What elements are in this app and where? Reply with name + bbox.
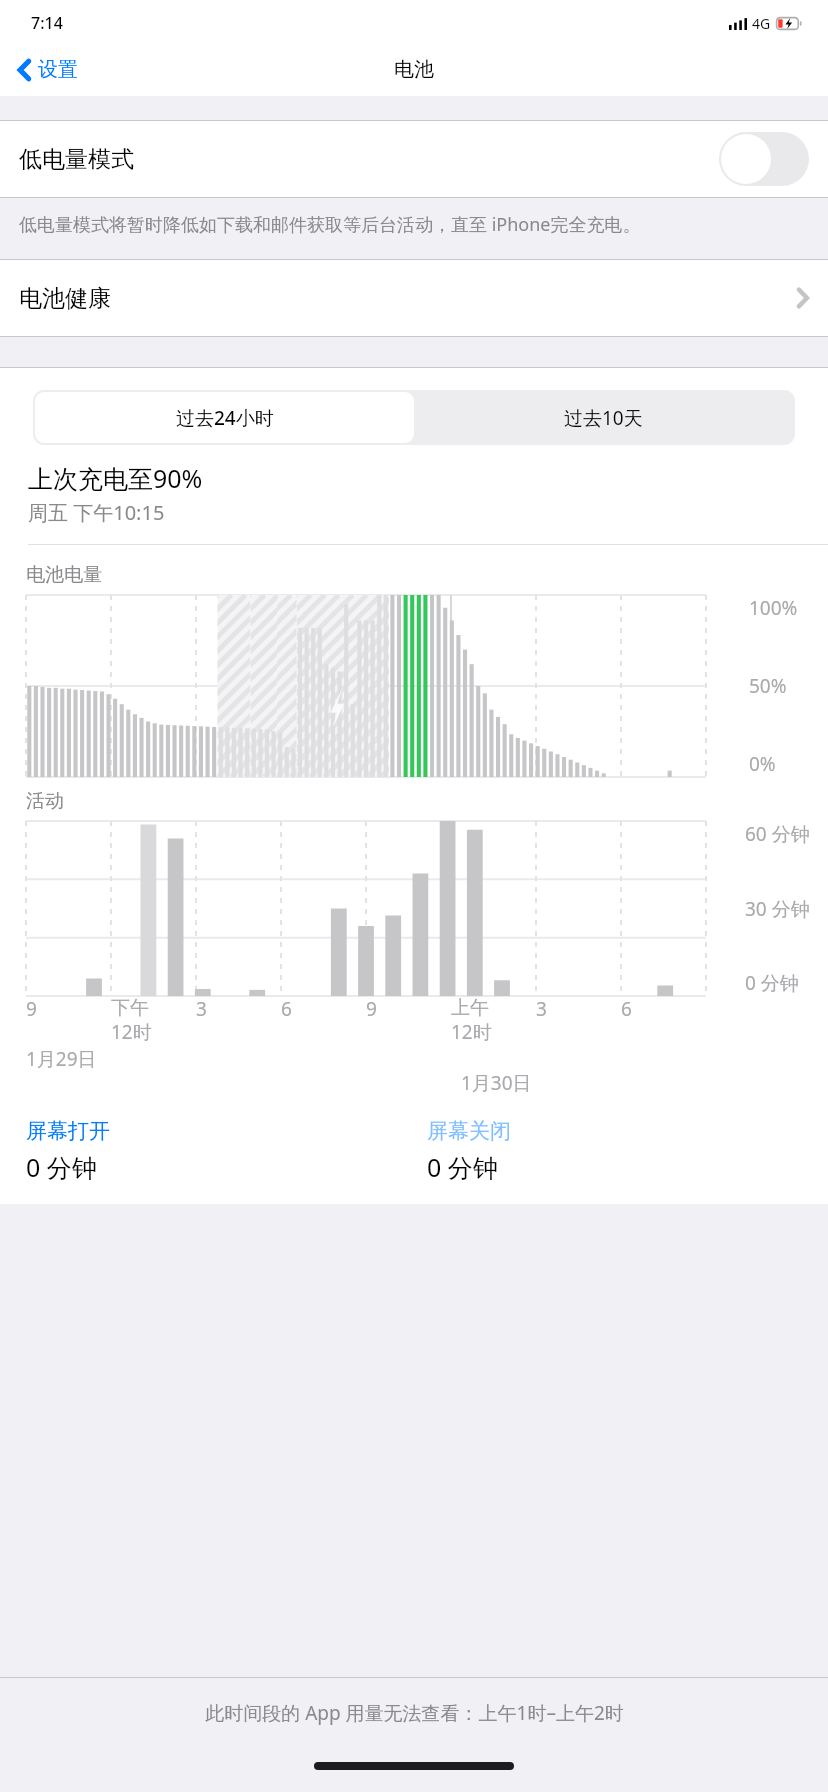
staticText: 9 [366, 996, 377, 1022]
staticText: 屏幕关闭 [427, 1118, 511, 1144]
staticText: 1月29日 [26, 1046, 97, 1072]
staticText: 电池健康 [19, 284, 111, 313]
staticText: 100% [749, 595, 798, 621]
staticText: 周五 下午10:15 [28, 499, 165, 526]
button[interactable]: 电池健康 [0, 260, 828, 336]
staticText: 30 分钟 [745, 896, 810, 922]
staticText: 6 [621, 996, 632, 1022]
staticText: 9 [26, 996, 37, 1022]
staticText: 屏幕打开 [26, 1118, 110, 1144]
staticText: 4G [752, 14, 771, 33]
staticText: 0% [749, 751, 776, 777]
button[interactable]: 过去24小时 [35, 392, 414, 443]
staticText: 0 分钟 [745, 970, 799, 996]
staticText: 50% [749, 673, 787, 699]
button[interactable]: 低电量模式 [0, 121, 828, 197]
button[interactable]: 低电量模式开关 [719, 132, 809, 186]
staticText: 下午 12时 [111, 996, 152, 1044]
staticText: 电池电量 [26, 563, 102, 587]
staticText: 过去24小时 [176, 405, 274, 431]
button[interactable]: 屏幕关闭 [427, 1118, 828, 1184]
button[interactable]: 屏幕打开 [26, 1118, 427, 1184]
button[interactable]: 设置 [0, 51, 90, 88]
staticText: 0 分钟 [26, 1150, 97, 1184]
staticText: 活动 [26, 789, 64, 813]
staticText: 上午 12时 [451, 996, 492, 1044]
staticText: 6 [281, 996, 292, 1022]
staticText: 0 分钟 [427, 1150, 498, 1184]
staticText: 1月30日 [461, 1070, 532, 1096]
staticText: 上次充电至90% [28, 461, 203, 495]
button[interactable]: 过去10天 [414, 392, 793, 443]
staticText: 低电量模式将暂时降低如下载和邮件获取等后台活动，直至 iPhone完全充电。 [19, 212, 641, 237]
staticText: 此时间段的 App 用量无法查看：上午1时–上午2时 [205, 1700, 624, 1726]
staticText: 低电量模式 [19, 145, 134, 174]
staticText: 7:14 [31, 12, 63, 34]
staticText: 60 分钟 [745, 821, 810, 847]
staticText: 设置 [38, 57, 78, 82]
staticText: 过去10天 [564, 405, 643, 431]
staticText: 3 [536, 996, 547, 1022]
staticText: 3 [196, 996, 207, 1022]
staticText: 电池 [394, 57, 434, 82]
